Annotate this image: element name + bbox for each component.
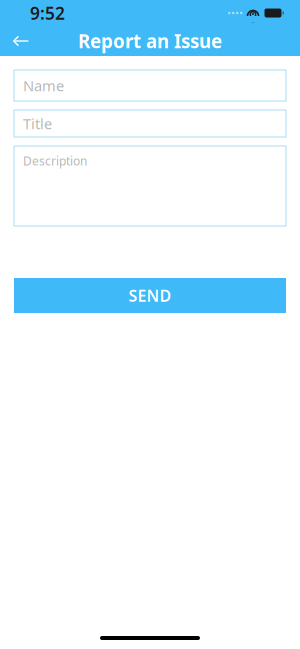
button[interactable]: Title: [14, 110, 286, 137]
staticText: Name: [23, 76, 64, 95]
button[interactable]: SEND: [14, 278, 286, 313]
button[interactable]: Description: [14, 146, 286, 226]
staticText: Title: [23, 114, 52, 133]
staticText: 9:52: [30, 1, 65, 24]
button[interactable]: Back: [4, 26, 38, 56]
staticText: Report an Issue: [78, 29, 222, 53]
staticText: Description: [23, 153, 87, 169]
staticText: SEND: [128, 285, 171, 306]
button[interactable]: Name: [14, 70, 286, 101]
